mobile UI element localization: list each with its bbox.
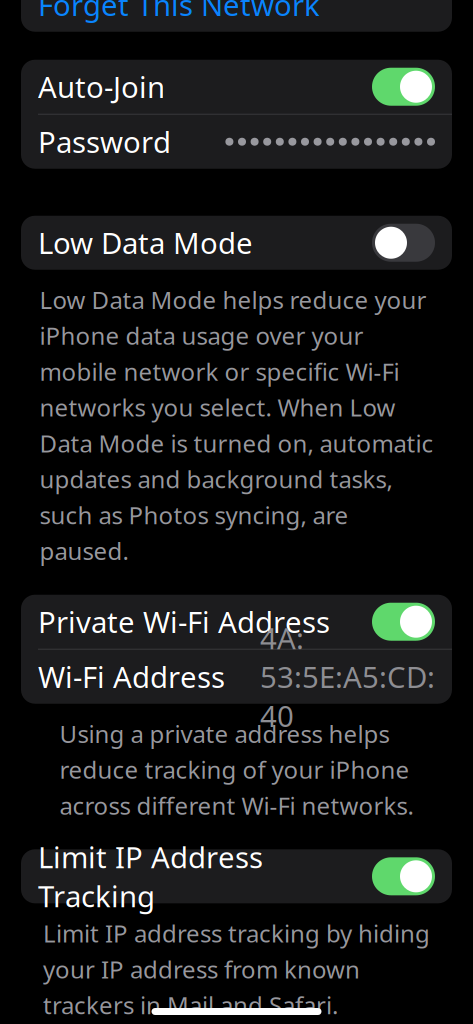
staticText: Private Wi-Fi Address	[38, 602, 330, 641]
button[interactable]: Forget This Network	[21, 0, 452, 32]
button[interactable]: Auto-Join	[21, 60, 452, 114]
button[interactable]: Wi-Fi Address	[21, 650, 452, 704]
button[interactable]: Low Data Mode	[21, 216, 452, 270]
staticText: Limit IP address tracking by hiding your…	[43, 917, 430, 1021]
staticText: Auto-Join	[38, 67, 165, 106]
staticText: 4A:53:5E:A5:CD:40	[260, 618, 435, 735]
button[interactable]: Limit IP Address Tracking	[21, 849, 452, 903]
staticText: Forget This Network	[38, 0, 320, 24]
staticText: Using a private address helps reduce tra…	[59, 718, 413, 821]
staticText: Limit IP Address Tracking	[38, 837, 263, 915]
staticText: Password	[38, 122, 171, 161]
staticText: Wi-Fi Address	[38, 657, 225, 696]
button[interactable]: Private Wi-Fi Address	[21, 595, 452, 649]
staticText: Low Data Mode	[38, 223, 253, 262]
button[interactable]: Password	[21, 115, 452, 169]
staticText: Low Data Mode helps reduce your iPhone d…	[39, 284, 433, 567]
